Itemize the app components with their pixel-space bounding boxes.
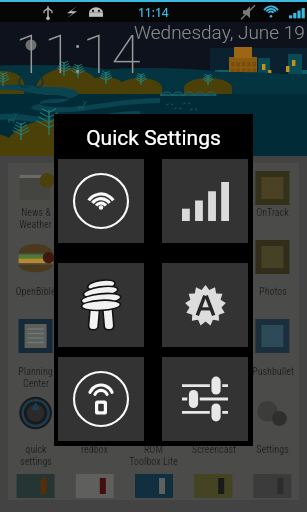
button[interactable]: quick [6,444,65,468]
staticText: Launcher [76,219,113,231]
button[interactable]: Proximity [184,366,243,390]
staticText: Photos [259,286,287,298]
button[interactable]: Settings [243,444,302,456]
button[interactable]: Screencast [184,444,243,456]
button[interactable]: Pushbullet [243,366,302,378]
button[interactable]: redbox [65,444,124,456]
staticText: Proximity [195,366,233,378]
staticText: Toolbox Lite [129,456,178,468]
staticText: Weather [19,219,52,231]
button[interactable]: Sound settings [162,357,248,441]
staticText: Pocket [140,366,168,378]
staticText: One Power [192,207,235,219]
button[interactable]: Opera [65,286,124,298]
staticText: redbox [81,444,108,456]
button[interactable]: Photos [243,286,302,298]
staticText: Nova [143,207,164,219]
staticText: Play Store [75,366,115,378]
staticText: Launcher [135,219,172,231]
button[interactable]: Next [65,207,124,231]
staticText: Planning [18,366,53,378]
button[interactable]: Overdrive [124,286,183,298]
button[interactable]: OpenBible [6,286,65,298]
staticText: News & [21,207,51,219]
button[interactable]: Hotspot [58,357,144,441]
staticText: 11:14 [138,4,169,20]
button[interactable]: Nova [124,207,183,231]
staticText: Wednesday, June 19 [134,21,305,43]
staticText: Overdrive [135,286,173,298]
staticText: Next [85,207,104,219]
button[interactable]: ROM [124,444,183,468]
button[interactable]: News & [6,207,65,231]
staticText: Settings [256,444,289,456]
button[interactable]: Play Store [65,366,124,378]
staticText: Opera [83,286,107,298]
button[interactable]: Planning [6,366,65,390]
staticText: OnTrack [256,207,289,219]
staticText: OpenBible [15,286,56,298]
button[interactable]: Phone [184,286,243,298]
staticText: Guard [202,219,226,231]
button[interactable]: One Power [184,207,243,231]
staticText: Phone [201,286,226,298]
button[interactable]: Mobile data [162,159,248,243]
staticText: Pushbullet [252,366,294,378]
staticText: 11:14 [15,24,141,86]
staticText: Calibrator [194,378,233,390]
staticText: settings [20,456,52,468]
button[interactable]: Auto brightness [162,263,248,347]
staticText: ROM [144,444,163,456]
button[interactable]: Pocket [124,366,183,378]
staticText: quick [25,444,47,456]
staticText: Center [23,378,49,390]
staticText: Quick Settings [54,126,253,151]
button[interactable]: OnTrack [243,207,302,219]
button[interactable]: Wi-Fi [58,159,144,243]
staticText: Screencast [192,444,236,456]
button[interactable]: Flashlight [58,263,144,347]
